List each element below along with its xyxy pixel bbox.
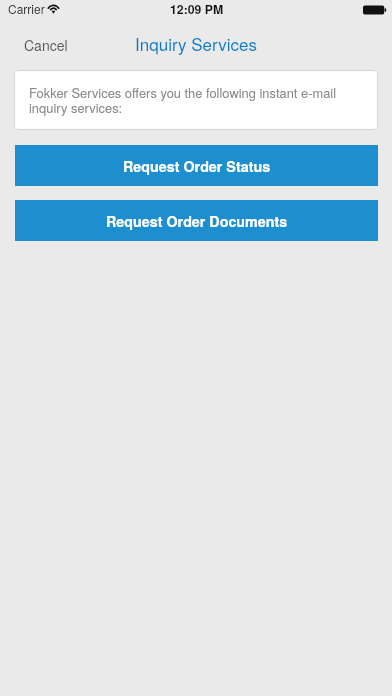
staticText: Carrier	[8, 0, 45, 17]
button[interactable]: Request Order Documents	[15, 200, 378, 241]
staticText: Cancel	[24, 35, 68, 55]
other: Wi-Fi signal	[46, 0, 62, 16]
staticText: 12:09 PM	[170, 0, 224, 18]
staticText: Inquiry Services	[135, 31, 257, 55]
staticText: Fokker Services offers you the following…	[29, 83, 359, 117]
staticText: Request Order Documents	[106, 211, 288, 231]
button[interactable]: Request Order Status	[15, 145, 378, 186]
staticText: Request Order Status	[123, 156, 271, 176]
button[interactable]: Cancel	[10, 28, 82, 62]
other: Battery full	[363, 5, 387, 15]
